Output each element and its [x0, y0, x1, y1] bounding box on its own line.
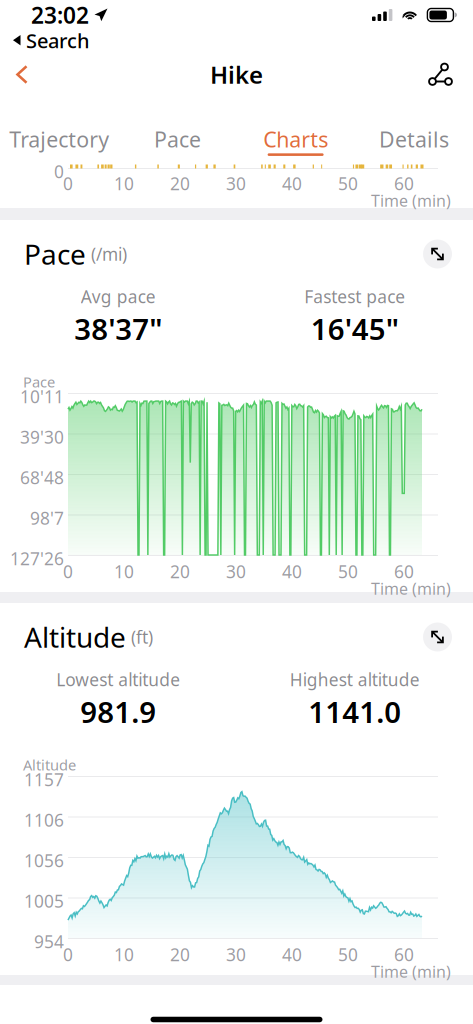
button[interactable]: Share [411, 54, 473, 95]
staticText: 10 [114, 560, 134, 583]
staticText: 16'45" [311, 309, 399, 348]
staticText: (ft) [126, 625, 153, 648]
button[interactable]: Details [355, 98, 473, 160]
button[interactable]: Trajectory [0, 98, 118, 160]
staticText: (/mi) [86, 242, 127, 265]
staticText: 1106 [24, 808, 64, 831]
staticText: Details [379, 125, 449, 153]
staticText: 0 [63, 560, 73, 583]
staticText: 1157 [24, 768, 64, 791]
staticText: Pace [154, 125, 201, 153]
staticText: Pace [23, 372, 55, 391]
staticText: Time (min) [371, 578, 451, 599]
staticText: Charts [263, 125, 328, 153]
staticText: 40 [282, 560, 302, 583]
staticText: 50 [338, 560, 358, 583]
staticText: 10 [114, 172, 134, 195]
staticText: Fastest pace [304, 285, 405, 308]
staticText: 1056 [24, 849, 64, 872]
staticText: Avg pace [81, 285, 156, 308]
staticText: 0 [54, 160, 64, 183]
staticText: 20 [170, 943, 190, 966]
staticText: Hike [210, 59, 263, 90]
staticText: 98'7 [30, 506, 64, 529]
staticText: 50 [338, 172, 358, 195]
staticText: 30 [226, 943, 246, 966]
staticText: Time (min) [371, 961, 451, 982]
staticText: Lowest altitude [56, 668, 180, 691]
staticText: Trajectory [9, 125, 109, 153]
staticText: 40 [282, 943, 302, 966]
button[interactable]: Back [0, 55, 44, 94]
button[interactable]: Expand Altitude chart [423, 622, 452, 651]
staticText: 30 [226, 172, 246, 195]
staticText: Time (min) [371, 190, 451, 211]
staticText: 39'30 [20, 425, 64, 448]
staticText: 60 [394, 560, 414, 583]
staticText: 981.9 [80, 692, 156, 731]
staticText: Search [26, 27, 90, 54]
button[interactable]: Back to Search [0, 25, 90, 56]
staticText: 20 [170, 560, 190, 583]
staticText: Altitude [23, 755, 76, 774]
staticText: 60 [394, 943, 414, 966]
staticText: 68'48 [20, 466, 64, 489]
staticText: 40 [282, 172, 302, 195]
staticText: 1005 [24, 889, 64, 912]
staticText: 10 [114, 943, 134, 966]
button[interactable]: Expand Pace chart [423, 239, 452, 268]
staticText: 954 [34, 930, 64, 953]
button[interactable]: Charts [236, 98, 355, 160]
staticText: 38'37" [74, 309, 162, 348]
staticText: Altitude [24, 618, 126, 656]
staticText: Highest altitude [290, 668, 420, 691]
staticText: Pace [24, 235, 86, 273]
staticText: 23:02 [31, 0, 89, 30]
staticText: 50 [338, 943, 358, 966]
staticText: 1141.0 [308, 692, 401, 731]
staticText: 10'11 [20, 385, 64, 408]
staticText: 20 [170, 172, 190, 195]
staticText: 60 [394, 172, 414, 195]
staticText: 30 [226, 560, 246, 583]
button[interactable]: Pace [118, 98, 236, 160]
staticText: 127'26 [10, 547, 64, 570]
staticText: 0 [63, 172, 73, 195]
staticText: 0 [63, 943, 73, 966]
